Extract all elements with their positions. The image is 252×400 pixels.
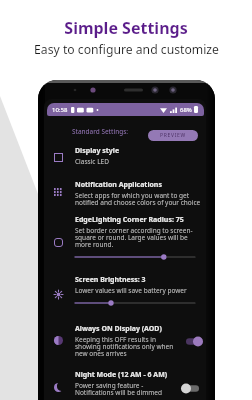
button[interactable]: PREVIEW [148,130,198,141]
button[interactable] [44,176,206,206]
button[interactable]: Turn on [181,383,199,394]
button[interactable] [44,142,206,172]
staticText: Simple Settings [64,17,188,39]
staticText: Screen Brightness: 3 [75,275,146,285]
staticText: Always ON Display (AOD) [75,324,162,334]
staticText: Display style [75,146,120,156]
staticText: Classic LED [75,157,109,166]
staticText: Standard Settings: [72,127,129,136]
staticText: Easy to configure and customize [34,41,219,58]
button[interactable]: Turn off [186,336,204,347]
staticText: 10:58 [52,106,68,114]
staticText: 68% [180,106,192,114]
staticText: Lower values will save battery power [75,286,187,295]
staticText: Notification Applications [75,180,162,190]
button[interactable] [44,271,206,317]
staticText: Set border corner according to screen-sq… [75,226,203,249]
button[interactable] [44,211,206,257]
staticText: EdgeLighting Corner Radius: 75 [75,215,184,225]
staticText: Night Mode (12 AM - 6 AM) [75,370,168,380]
staticText: Select apps for which you want to get no… [75,191,203,207]
staticText: PREVIEW [160,132,186,139]
button[interactable] [44,366,206,396]
button[interactable] [44,320,206,350]
staticText: Power saving feature - Notifications wil… [75,381,179,397]
staticText: Keeping this OFF results in showing noti… [75,335,179,358]
